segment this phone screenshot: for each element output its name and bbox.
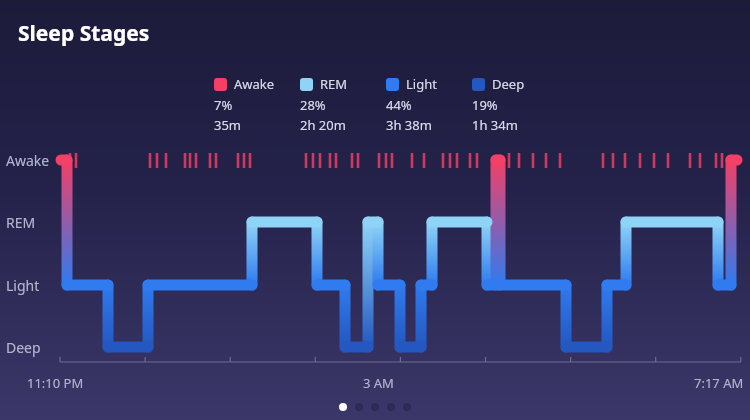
staticText: 44%	[386, 96, 412, 114]
button[interactable]: Light	[386, 75, 472, 134]
staticText: 7%	[214, 96, 233, 114]
staticText: Deep	[6, 338, 41, 357]
staticText: 2h 20m	[300, 116, 346, 134]
button[interactable]: Page indicator	[335, 403, 415, 411]
staticText: Awake	[234, 75, 275, 93]
staticText: Awake	[6, 151, 50, 170]
staticText: 19%	[472, 96, 498, 114]
staticText: Light	[406, 75, 437, 93]
staticText: Deep	[492, 75, 525, 93]
staticText: 11:10 PM	[27, 374, 84, 392]
staticText: 28%	[300, 96, 326, 114]
button[interactable]: Sleep Stages	[18, 19, 150, 48]
button[interactable]: Deep	[472, 75, 558, 134]
staticText: 7:17 AM	[694, 374, 744, 392]
staticText: Light	[6, 276, 40, 295]
staticText: REM	[6, 213, 36, 232]
staticText: 3 AM	[363, 374, 394, 392]
staticText: Sleep Stages	[18, 19, 150, 48]
staticText: REM	[320, 75, 348, 93]
button[interactable]: REM	[300, 75, 386, 134]
staticText: 1h 34m	[472, 116, 518, 134]
staticText: 3h 38m	[386, 116, 432, 134]
staticText: 35m	[214, 116, 242, 134]
button[interactable]: Awake	[214, 75, 300, 134]
